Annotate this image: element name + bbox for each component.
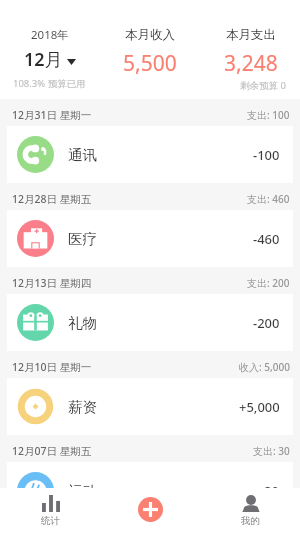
staticText: -200 [253, 314, 280, 332]
staticText: 支出: 460 [247, 192, 290, 206]
button[interactable]: 礼物 [7, 294, 293, 351]
staticText: 支出: 30 [253, 444, 290, 458]
staticText: 支出: 100 [247, 108, 290, 122]
staticText: 12月 [24, 47, 63, 72]
staticText: -30 [260, 482, 280, 500]
button[interactable]: 薪资 [7, 378, 293, 435]
staticText: 礼物 [68, 314, 97, 332]
staticText: 5,500 [123, 49, 177, 78]
staticText: 3,248 [224, 49, 278, 78]
staticText: -460 [253, 230, 280, 248]
staticText: 12月07日 星期五 [12, 444, 92, 458]
staticText: 通讯 [68, 146, 97, 164]
staticText: 108.3% 预算已用 [13, 77, 86, 90]
button[interactable]: 统计 [29, 491, 72, 531]
staticText: 薪资 [68, 398, 97, 416]
staticText: 本月支出 [226, 27, 276, 43]
button[interactable]: 医疗 [7, 210, 293, 267]
staticText: 12月10日 星期一 [12, 360, 92, 374]
staticText: 12月28日 星期五 [12, 192, 92, 206]
staticText: 统计 [41, 515, 60, 527]
button[interactable]: 通讯 [7, 126, 293, 183]
button[interactable]: 我的 [229, 491, 272, 531]
staticText: 剩余预算 0 [240, 79, 286, 92]
button[interactable]: Add record [138, 497, 163, 522]
staticText: -100 [253, 146, 280, 164]
staticText: 医疗 [68, 230, 97, 248]
button[interactable]: 运动 [7, 462, 293, 519]
staticText: 收入: 5,000 [239, 360, 290, 374]
staticText: 2018年 [31, 27, 69, 43]
staticText: +5,000 [239, 398, 280, 416]
staticText: 支出: 200 [247, 276, 290, 290]
staticText: 12月31日 星期一 [12, 108, 92, 122]
staticText: 运动 [68, 482, 97, 500]
staticText: 本月收入 [125, 27, 175, 43]
staticText: 12月13日 星期四 [12, 276, 92, 290]
staticText: 我的 [241, 515, 260, 527]
